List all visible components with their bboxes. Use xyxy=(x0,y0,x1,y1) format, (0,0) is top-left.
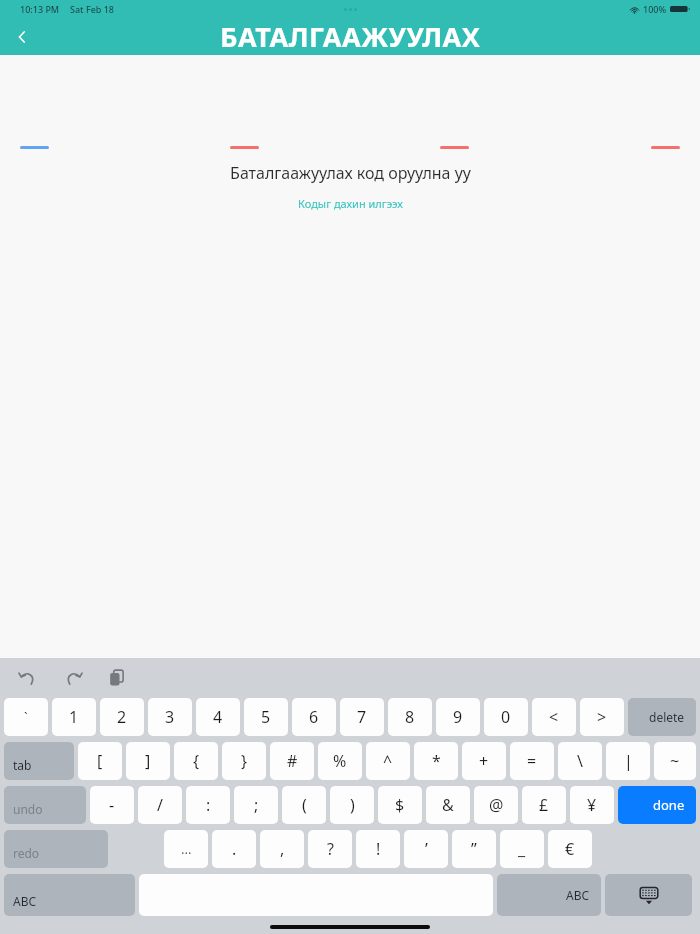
button[interactable]: 8 xyxy=(388,698,432,736)
staticText: ~ xyxy=(670,750,680,772)
button[interactable]: redo xyxy=(4,830,108,868)
staticText: ... xyxy=(181,840,192,858)
button[interactable]: + xyxy=(462,742,506,780)
staticText: 10:13 PM xyxy=(20,3,60,15)
button[interactable]: Redo xyxy=(54,659,92,697)
button[interactable] xyxy=(440,146,469,149)
button[interactable]: _ xyxy=(500,830,544,868)
staticText: # xyxy=(287,750,298,772)
button[interactable]: [ xyxy=(78,742,122,780)
staticText: 5 xyxy=(261,706,271,728)
button[interactable]: 9 xyxy=(436,698,480,736)
button[interactable]: Back xyxy=(0,18,44,55)
button[interactable]: ” xyxy=(452,830,496,868)
staticText: tab xyxy=(13,757,32,773)
button[interactable]: < xyxy=(532,698,576,736)
button[interactable]: ? xyxy=(308,830,352,868)
button[interactable]: ... xyxy=(164,830,208,868)
button[interactable]: , xyxy=(260,830,304,868)
button[interactable]: ~ xyxy=(654,742,696,780)
staticText: | xyxy=(624,750,633,772)
staticText: _ xyxy=(518,838,526,860)
staticText: { xyxy=(193,750,200,772)
staticText: : xyxy=(206,794,211,816)
staticText: 100% xyxy=(643,3,667,15)
button[interactable]: % xyxy=(318,742,362,780)
staticText: delete xyxy=(649,709,685,725)
staticText: Кодыг дахин илгээх xyxy=(298,196,403,211)
button[interactable]: : xyxy=(186,786,230,824)
staticText: \ xyxy=(577,750,583,772)
button[interactable]: € xyxy=(548,830,592,868)
button[interactable]: ¥ xyxy=(570,786,614,824)
button[interactable]: > xyxy=(580,698,624,736)
staticText: , xyxy=(280,838,285,860)
staticText: . xyxy=(232,838,237,860)
button[interactable]: } xyxy=(222,742,266,780)
button[interactable]: 7 xyxy=(340,698,384,736)
button[interactable]: 4 xyxy=(196,698,240,736)
staticText: undo xyxy=(13,801,43,817)
button[interactable]: 5 xyxy=(244,698,288,736)
button[interactable]: Hide keyboard xyxy=(605,874,692,916)
staticText: } xyxy=(241,750,248,772)
staticText: [ xyxy=(97,750,103,772)
button[interactable]: & xyxy=(426,786,470,824)
button[interactable]: tab xyxy=(4,742,74,780)
staticText: Sat Feb 18 xyxy=(70,3,115,15)
staticText: ( xyxy=(302,794,307,816)
button[interactable]: # xyxy=(270,742,314,780)
staticText: 8 xyxy=(405,706,415,728)
button[interactable]: delete xyxy=(628,698,696,736)
button[interactable]: @ xyxy=(474,786,518,824)
button[interactable]: ; xyxy=(234,786,278,824)
button[interactable]: ^ xyxy=(366,742,410,780)
button[interactable]: - xyxy=(90,786,134,824)
button[interactable]: * xyxy=(414,742,458,780)
staticText: 4 xyxy=(213,706,223,728)
button[interactable]: 2 xyxy=(100,698,144,736)
button[interactable]: ABC xyxy=(497,874,601,916)
button[interactable]: ( xyxy=(282,786,326,824)
staticText: 3 xyxy=(165,706,175,728)
button[interactable]: | xyxy=(606,742,650,780)
staticText: ’ xyxy=(425,838,428,860)
button[interactable]: = xyxy=(510,742,554,780)
button[interactable]: Кодыг дахин илгээх xyxy=(292,194,409,213)
staticText: < xyxy=(549,706,559,728)
button[interactable]: Undo xyxy=(8,659,46,697)
button[interactable]: ’ xyxy=(404,830,448,868)
button[interactable]: 3 xyxy=(148,698,192,736)
button[interactable]: Paste xyxy=(98,659,136,697)
staticText: 2 xyxy=(117,706,127,728)
button[interactable]: 0 xyxy=(484,698,528,736)
button[interactable]: . xyxy=(212,830,256,868)
button[interactable]: 6 xyxy=(292,698,336,736)
button[interactable]: 1 xyxy=(52,698,96,736)
staticText: & xyxy=(442,794,454,816)
staticText: * xyxy=(432,750,441,772)
button[interactable]: ABC xyxy=(4,874,135,916)
button[interactable] xyxy=(651,146,680,149)
button[interactable] xyxy=(230,146,259,149)
button[interactable]: ` xyxy=(4,698,48,736)
staticText: redo xyxy=(13,845,40,861)
staticText: ABC xyxy=(13,893,37,909)
button[interactable]: \ xyxy=(558,742,602,780)
button[interactable] xyxy=(20,146,49,149)
staticText: 1 xyxy=(69,706,79,728)
staticText: $ xyxy=(395,794,405,816)
button[interactable]: done xyxy=(618,786,696,824)
staticText: = xyxy=(527,750,537,772)
staticText: 9 xyxy=(453,706,463,728)
button[interactable]: ! xyxy=(356,830,400,868)
button[interactable]: ) xyxy=(330,786,374,824)
button[interactable]: { xyxy=(174,742,218,780)
button[interactable]: undo xyxy=(4,786,86,824)
button[interactable]: $ xyxy=(378,786,422,824)
button[interactable]: / xyxy=(138,786,182,824)
button[interactable]: ] xyxy=(126,742,170,780)
staticText: ^ xyxy=(383,750,393,772)
button[interactable]: £ xyxy=(522,786,566,824)
